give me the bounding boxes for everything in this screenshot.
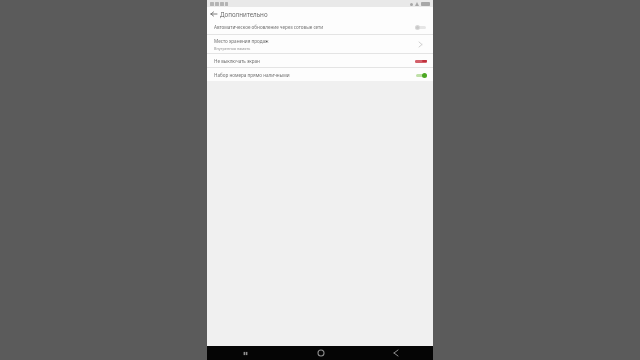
staticText: Дополнительно	[220, 10, 268, 18]
button[interactable]: Автоматическое обновление через сотовые …	[207, 20, 433, 34]
button[interactable]: Home	[283, 346, 358, 360]
button[interactable]: Набор номера прямо наличными	[207, 68, 433, 81]
button[interactable]: Toggle Автоматическое обновление через с…	[412, 20, 428, 34]
button[interactable]: Toggle Место хранения продаж	[412, 35, 428, 53]
button[interactable]: Back	[358, 346, 433, 360]
button[interactable]: Не выключать экран	[207, 54, 433, 67]
staticText: Автоматическое обновление через сотовые …	[214, 24, 324, 30]
staticText: Набор номера прямо наличными	[214, 72, 290, 78]
button[interactable]: Toggle Набор номера прямо наличными	[412, 68, 428, 81]
staticText: Не выключать экран	[214, 58, 260, 64]
button[interactable]: Back	[207, 7, 220, 20]
staticText: Место хранения продаж	[214, 38, 269, 44]
button[interactable]: Место хранения продаж	[207, 35, 433, 53]
button[interactable]: Recents	[207, 346, 283, 360]
staticText: Внутренняя память	[214, 46, 251, 51]
button[interactable]: Toggle Не выключать экран	[412, 54, 428, 67]
